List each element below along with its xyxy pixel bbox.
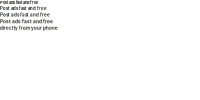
staticText: Post ads fast and free [0, 12, 50, 17]
staticText: directly from your phone [0, 25, 58, 31]
staticText: Post ads fast and free [0, 0, 38, 5]
staticText: Post ads fast and free [0, 18, 53, 24]
staticText: Post ads fast and free [0, 6, 47, 11]
